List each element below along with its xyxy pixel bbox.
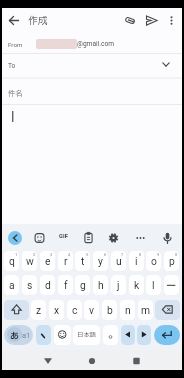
- button[interactable]: e: [40, 251, 55, 271]
- button[interactable]: h: [93, 275, 108, 295]
- button[interactable]: [38, 352, 58, 368]
- staticText: c: [72, 304, 78, 316]
- staticText: 6: [104, 252, 107, 257]
- button[interactable]: a: [4, 275, 19, 295]
- button[interactable]: [143, 13, 159, 29]
- button[interactable]: g: [75, 275, 90, 295]
- button[interactable]: [6, 12, 22, 28]
- staticText: a: [9, 279, 15, 291]
- button[interactable]: x: [49, 300, 64, 320]
- button[interactable]: [161, 230, 174, 243]
- staticText: b: [107, 304, 113, 316]
- button[interactable]: GIF: [56, 230, 71, 243]
- staticText: To: [8, 62, 16, 70]
- button[interactable]: i: [129, 251, 144, 271]
- staticText: 9: [157, 252, 160, 257]
- button[interactable]: [33, 230, 46, 243]
- button[interactable]: [103, 325, 118, 345]
- button[interactable]: k: [129, 275, 144, 295]
- staticText: From: [8, 41, 23, 48]
- button[interactable]: p: [164, 251, 179, 271]
- button[interactable]: [82, 352, 102, 368]
- button[interactable]: u: [111, 251, 126, 271]
- staticText: f: [64, 279, 68, 291]
- button[interactable]: [164, 13, 180, 29]
- button[interactable]: c: [67, 300, 82, 320]
- staticText: 3: [50, 252, 53, 257]
- staticText: a1: [22, 331, 31, 340]
- button[interactable]: r: [58, 251, 73, 271]
- button[interactable]: j: [111, 275, 126, 295]
- button[interactable]: b: [102, 300, 117, 320]
- button[interactable]: [107, 230, 120, 243]
- button[interactable]: [4, 325, 33, 345]
- staticText: o: [151, 255, 157, 267]
- button[interactable]: w: [22, 251, 37, 271]
- staticText: h: [98, 279, 104, 291]
- button[interactable]: d: [40, 275, 55, 295]
- button[interactable]: t: [75, 251, 90, 271]
- staticText: 件名: [8, 88, 23, 99]
- staticText: n: [125, 304, 131, 316]
- button[interactable]: [73, 325, 100, 345]
- staticText: GIF: [59, 233, 69, 240]
- staticText: 8: [139, 252, 142, 257]
- staticText: y: [98, 255, 103, 267]
- button[interactable]: [122, 13, 138, 29]
- staticText: ー: [166, 279, 177, 292]
- staticText: 5: [86, 252, 89, 257]
- button[interactable]: ー: [164, 275, 179, 295]
- button[interactable]: [154, 325, 180, 345]
- button[interactable]: [82, 230, 95, 243]
- button[interactable]: [155, 300, 180, 320]
- button[interactable]: [126, 352, 146, 368]
- staticText: e: [45, 255, 51, 267]
- staticText: 0: [175, 252, 178, 257]
- button[interactable]: [8, 231, 22, 245]
- button[interactable]: v: [84, 300, 99, 320]
- staticText: r: [64, 255, 68, 267]
- staticText: 2: [33, 252, 36, 257]
- staticText: j: [117, 279, 120, 291]
- staticText: 日本語: [77, 330, 97, 340]
- button[interactable]: l: [146, 275, 161, 295]
- staticText: g: [80, 279, 86, 291]
- staticText: i: [135, 255, 138, 267]
- staticText: s: [27, 279, 33, 291]
- staticText: u: [116, 255, 122, 267]
- button[interactable]: o: [146, 251, 161, 271]
- staticText: m: [141, 304, 151, 316]
- button[interactable]: [54, 325, 71, 345]
- staticText: 作成: [28, 14, 48, 29]
- button[interactable]: s: [22, 275, 37, 295]
- staticText: 1: [15, 252, 18, 257]
- staticText: x: [54, 304, 60, 316]
- staticText: v: [89, 304, 94, 316]
- button[interactable]: [36, 325, 51, 345]
- staticText: t: [81, 255, 85, 267]
- button[interactable]: n: [120, 300, 135, 320]
- button[interactable]: [137, 325, 151, 345]
- staticText: w: [26, 255, 34, 267]
- button[interactable]: f: [58, 275, 73, 295]
- staticText: 7: [121, 252, 124, 257]
- staticText: 4: [68, 252, 71, 257]
- staticText: q: [9, 255, 15, 267]
- staticText: d: [45, 279, 51, 291]
- staticText: l: [152, 279, 155, 291]
- button[interactable]: [4, 300, 29, 320]
- staticText: あ: [10, 329, 20, 342]
- button[interactable]: y: [93, 251, 108, 271]
- button[interactable]: q: [4, 251, 19, 271]
- button[interactable]: z: [31, 300, 46, 320]
- staticText: p: [169, 255, 175, 267]
- staticText: @gmail.com: [77, 40, 114, 48]
- staticText: z: [36, 304, 42, 316]
- staticText: k: [134, 279, 140, 291]
- button[interactable]: [134, 230, 147, 243]
- button[interactable]: [121, 325, 135, 345]
- button[interactable]: m: [138, 300, 153, 320]
